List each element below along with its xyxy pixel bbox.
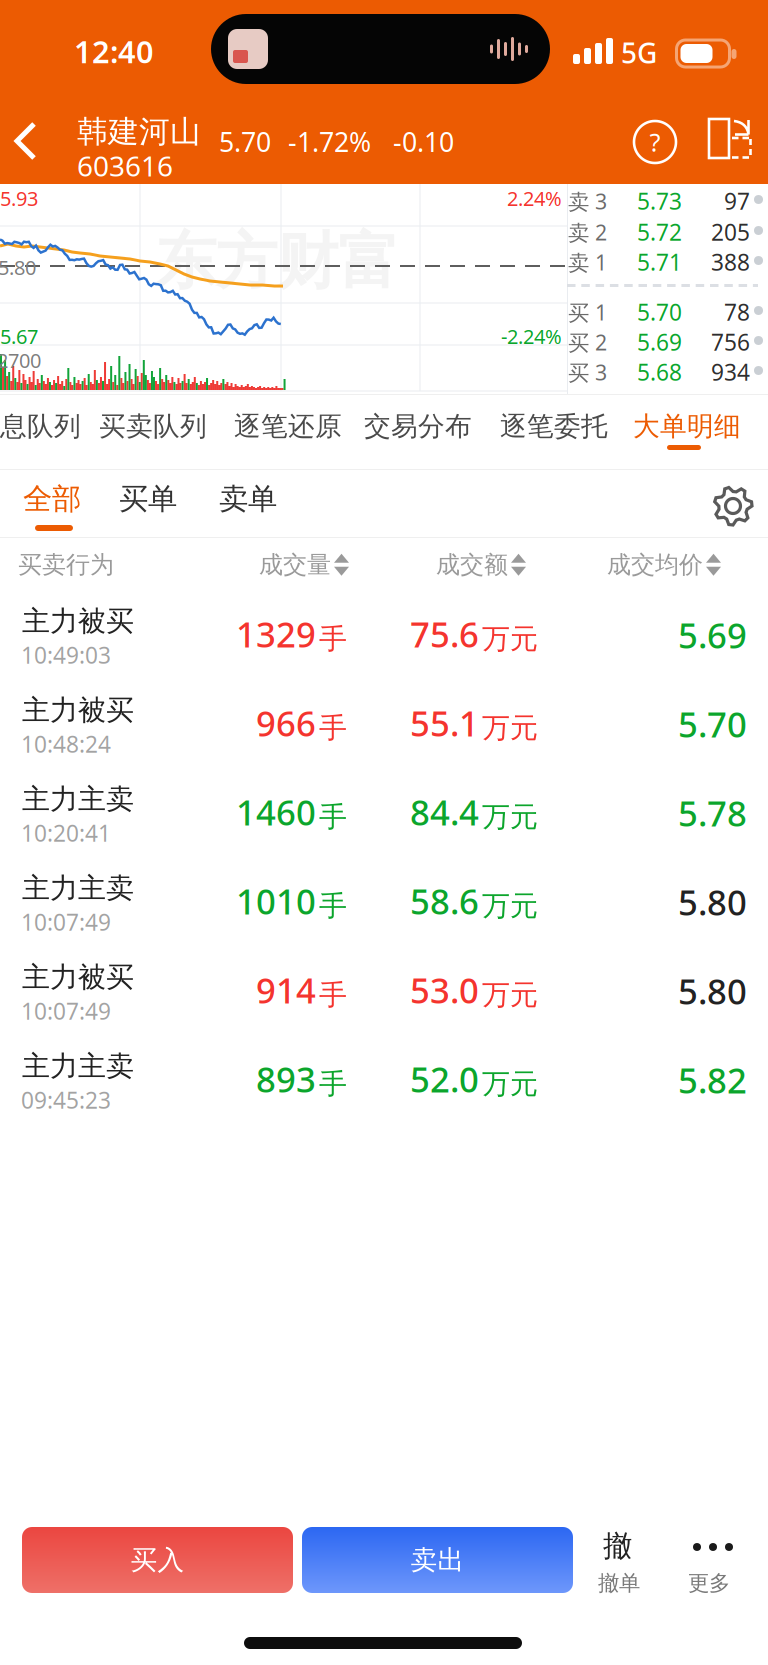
staticText: 09:45:23: [21, 1085, 111, 1115]
staticText: 万元: [482, 800, 538, 834]
staticText: 主力被买: [22, 604, 134, 638]
staticText: 78: [724, 297, 750, 327]
button[interactable]: 卖出: [302, 1527, 573, 1593]
button[interactable]: 卖 2: [568, 217, 768, 248]
button[interactable]: 主力主卖: [0, 770, 768, 859]
staticText: 东方财富: [155, 224, 399, 299]
button[interactable]: 交易分布: [364, 395, 468, 470]
button[interactable]: 主力主卖: [0, 859, 768, 948]
button[interactable]: Help: [626, 113, 684, 171]
staticText: 5.70: [219, 124, 271, 159]
staticText: 成交额: [436, 550, 508, 579]
staticText: 5.73: [637, 186, 682, 216]
staticText: 卖 3: [568, 187, 607, 215]
button[interactable]: 买单: [112, 470, 186, 538]
staticText: 893: [256, 1056, 316, 1102]
button[interactable]: 买 3: [568, 357, 768, 388]
staticText: 息队列: [0, 410, 81, 443]
staticText: 手: [319, 622, 347, 656]
button[interactable]: 撤: [587, 1512, 653, 1588]
staticText: 5.93: [0, 185, 38, 212]
staticText: 5.67: [0, 323, 38, 350]
staticText: 手: [319, 978, 347, 1012]
staticText: 5G: [621, 34, 657, 71]
button[interactable]: 成交额: [436, 550, 526, 579]
button[interactable]: 成交量: [259, 550, 349, 579]
staticText: 主力被买: [22, 693, 134, 727]
staticText: 52.0: [410, 1056, 479, 1102]
button[interactable]: Back: [0, 98, 58, 184]
staticText: 966: [256, 700, 316, 746]
staticText: 更多: [688, 1570, 730, 1596]
staticText: 万元: [482, 622, 538, 656]
staticText: 手: [319, 800, 347, 834]
button[interactable]: 买卖队列: [99, 395, 203, 470]
staticText: 撤单: [598, 1570, 640, 1596]
staticText: 主力主卖: [22, 782, 134, 816]
staticText: 卖 1: [568, 248, 607, 276]
staticText: 388: [711, 247, 750, 277]
staticText: 2.24%: [507, 185, 562, 212]
staticText: 买 2: [568, 328, 607, 356]
staticText: -2.24%: [501, 323, 562, 350]
staticText: 5.71: [637, 247, 682, 277]
staticText: 1010: [236, 878, 316, 924]
staticText: 万元: [482, 889, 538, 923]
staticText: 934: [711, 357, 750, 387]
staticText: 97: [724, 186, 750, 216]
staticText: 买 3: [568, 358, 607, 386]
staticText: 205: [711, 217, 750, 247]
button[interactable]: 卖 3: [568, 186, 768, 217]
staticText: 5.72: [637, 217, 682, 247]
staticText: 全部: [23, 481, 81, 517]
staticText: -1.72%: [288, 124, 371, 159]
staticText: 万元: [482, 978, 538, 1012]
button[interactable]: 买 2: [568, 327, 768, 358]
staticText: 5.70: [637, 297, 682, 327]
staticText: -0.10: [393, 124, 454, 159]
button[interactable]: 主力主卖: [0, 1037, 768, 1126]
button[interactable]: 卖单: [212, 470, 286, 538]
button[interactable]: 买 1: [568, 297, 768, 328]
staticText: 10:20:41: [21, 818, 111, 848]
staticText: 撤: [603, 1528, 632, 1564]
staticText: 交易分布: [364, 410, 472, 443]
button[interactable]: Split view: [699, 112, 757, 170]
staticText: 914: [256, 967, 316, 1013]
staticText: 84.4: [410, 789, 479, 835]
button[interactable]: Settings: [709, 482, 757, 530]
staticText: 5.82: [678, 1057, 747, 1103]
button[interactable]: 主力被买: [0, 948, 768, 1037]
staticText: 主力主卖: [22, 871, 134, 905]
button[interactable]: 主力被买: [0, 592, 768, 681]
staticText: 2700: [0, 347, 41, 374]
button[interactable]: 逐笔委托: [500, 395, 604, 470]
staticText: 买单: [119, 481, 177, 517]
staticText: 主力被买: [22, 960, 134, 994]
staticText: 逐笔还原: [234, 410, 342, 443]
staticText: 韩建河山: [77, 113, 201, 151]
staticText: 10:07:49: [21, 996, 111, 1026]
button[interactable]: 买入: [22, 1527, 293, 1593]
staticText: 5.69: [678, 612, 747, 658]
staticText: 卖单: [219, 481, 277, 517]
button[interactable]: 大单明细: [633, 395, 737, 470]
button[interactable]: 更多: [680, 1512, 746, 1588]
button[interactable]: 全部: [16, 470, 90, 538]
staticText: 卖 2: [568, 218, 607, 246]
staticText: 5.70: [678, 701, 747, 747]
staticText: 1460: [236, 789, 316, 835]
staticText: 53.0: [410, 967, 479, 1013]
button[interactable]: 主力被买: [0, 681, 768, 770]
staticText: 逐笔委托: [500, 410, 608, 443]
staticText: 大单明细: [633, 410, 741, 443]
button[interactable]: 逐笔还原: [234, 395, 338, 470]
staticText: 手: [319, 889, 347, 923]
button[interactable]: 成交均价: [607, 550, 721, 579]
staticText: 5.68: [637, 357, 682, 387]
staticText: 买卖队列: [99, 410, 207, 443]
staticText: 买 1: [568, 298, 607, 326]
button[interactable]: 卖 1: [568, 247, 768, 278]
button[interactable]: 息队列: [0, 395, 104, 470]
staticText: 12:40: [74, 31, 154, 72]
